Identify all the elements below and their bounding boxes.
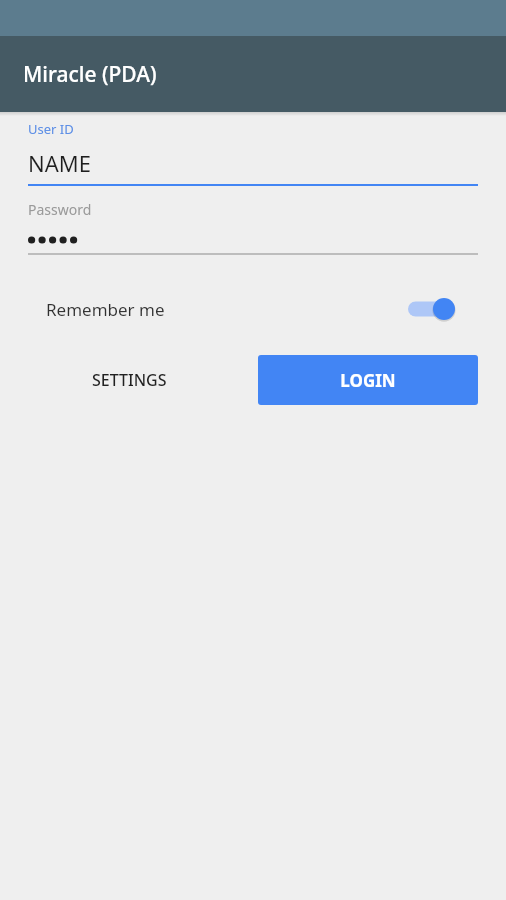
button[interactable]: User ID: [0, 120, 506, 186]
staticText: User ID: [28, 120, 74, 138]
staticText: Miracle (PDA): [23, 60, 157, 89]
staticText: Remember me: [46, 298, 165, 321]
button[interactable]: LOGIN: [258, 355, 478, 405]
staticText: SETTINGS: [92, 369, 167, 391]
staticText: Password: [28, 200, 92, 219]
staticText: LOGIN: [340, 369, 396, 392]
staticText: NAME: [28, 148, 91, 178]
button[interactable]: Remember me: [0, 285, 506, 333]
button[interactable]: SETTINGS: [72, 355, 187, 405]
other: Remember me toggle: [408, 294, 460, 324]
button[interactable]: Password: [0, 200, 506, 255]
